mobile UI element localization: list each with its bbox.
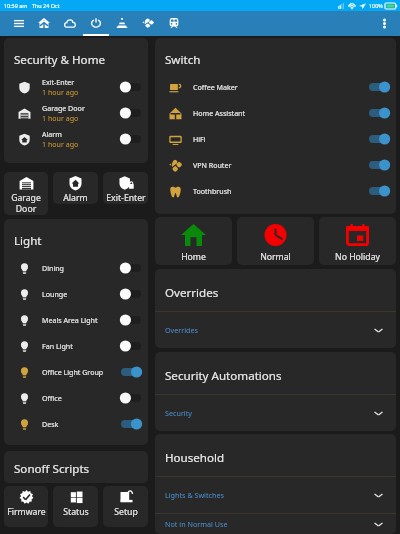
button[interactable]: VPN Router [155, 152, 396, 178]
button[interactable] [369, 81, 389, 93]
button[interactable]: Media [109, 11, 135, 36]
staticText: Normal [260, 251, 291, 263]
button[interactable] [121, 366, 141, 378]
button[interactable] [121, 81, 141, 93]
staticText: 1 hour ago [42, 113, 79, 123]
button[interactable]: Home [155, 217, 232, 265]
staticText: Status [63, 506, 89, 518]
staticText: Sonoff Scripts [14, 461, 90, 477]
staticText: 10:59 am [4, 2, 28, 9]
button[interactable]: Office Light Group [4, 359, 148, 385]
button[interactable] [121, 340, 141, 352]
staticText: Coffee Maker [193, 82, 238, 92]
staticText: Garage Door [42, 103, 85, 113]
button[interactable] [121, 418, 141, 430]
staticText: Setup [114, 506, 138, 518]
button[interactable] [369, 133, 389, 145]
button[interactable]: Toothbrush [155, 178, 396, 204]
button[interactable]: Power [83, 11, 109, 36]
staticText: Security [165, 408, 374, 418]
staticText: 100% [369, 2, 383, 9]
button[interactable]: Status [53, 486, 98, 527]
button[interactable]: Alarm [4, 126, 148, 152]
staticText: Desk [42, 419, 59, 429]
staticText: Meals Area Light [42, 315, 98, 325]
button[interactable]: Lounge [4, 281, 148, 307]
staticText: 1 hour ago [42, 87, 79, 97]
button[interactable]: No Holiday [319, 217, 396, 265]
staticText: Switch [165, 52, 201, 68]
staticText: Lights & Switches [165, 490, 374, 500]
button[interactable] [369, 185, 389, 197]
button[interactable]: Office [4, 385, 148, 411]
button[interactable]: Exit-Enter [103, 172, 148, 204]
staticText: HiFi [193, 134, 206, 144]
staticText: Light [14, 233, 42, 249]
staticText: Thu 24 Oct [32, 2, 60, 9]
button[interactable]: Meals Area Light [4, 307, 148, 333]
staticText: Firmware [7, 506, 46, 518]
button[interactable] [121, 107, 141, 119]
button[interactable]: Home Assistant [31, 11, 57, 36]
button[interactable]: Dining [4, 255, 148, 281]
button[interactable] [369, 107, 389, 119]
staticText: Office [42, 393, 62, 403]
staticText: Dining [42, 263, 64, 273]
button[interactable]: Setup [103, 486, 148, 527]
staticText: Not in Normal Use [165, 519, 374, 529]
button[interactable] [121, 288, 141, 300]
staticText: No Holiday [335, 251, 380, 263]
staticText: Toothbrush [193, 186, 232, 196]
staticText: Fan Light [42, 341, 73, 351]
button[interactable]: Home Assistant [155, 100, 396, 126]
button[interactable]: Exit-Enter [4, 74, 148, 100]
button[interactable]: Alarm [53, 172, 98, 204]
button[interactable] [121, 133, 141, 145]
button[interactable]: HiFi [155, 126, 396, 152]
staticText: Household [165, 450, 225, 466]
staticText: Overrides [165, 325, 374, 335]
staticText: Alarm [63, 192, 88, 204]
staticText: Overrides [165, 285, 219, 301]
button[interactable] [121, 314, 141, 326]
button[interactable]: Firmware [4, 486, 48, 527]
staticText: Home Assistant [193, 108, 246, 118]
button[interactable]: Transport [161, 11, 187, 36]
staticText: Office Light Group [42, 367, 104, 377]
button[interactable]: Coffee Maker [155, 74, 396, 100]
staticText: Security Automations [165, 368, 282, 384]
button[interactable]: Menu [0, 11, 31, 36]
button[interactable] [121, 262, 141, 274]
staticText: Garage Door [11, 192, 41, 215]
button[interactable]: Desk [4, 411, 148, 437]
staticText: Alarm [42, 129, 62, 139]
button[interactable]: Normal [237, 217, 314, 265]
button[interactable]: More options [368, 11, 400, 36]
button[interactable]: Security [155, 395, 396, 431]
button[interactable]: Weather [57, 11, 83, 36]
button[interactable]: Kodi [135, 11, 161, 36]
button[interactable]: Overrides [155, 312, 396, 348]
button[interactable] [121, 392, 141, 404]
button[interactable]: Lights & Switches [155, 477, 396, 513]
staticText: 1 hour ago [42, 139, 79, 149]
button[interactable]: Fan Light [4, 333, 148, 359]
staticText: Home [181, 251, 206, 263]
button[interactable]: Garage Door [4, 172, 48, 215]
staticText: VPN Router [193, 160, 232, 170]
button[interactable] [369, 159, 389, 171]
staticText: Exit-Enter [42, 77, 75, 87]
button[interactable]: Garage Door [4, 100, 148, 126]
staticText: Exit-Enter [106, 192, 146, 204]
staticText: Lounge [42, 289, 68, 299]
staticText: Security & Home [14, 52, 106, 68]
button[interactable]: Not in Normal Use [155, 514, 396, 534]
